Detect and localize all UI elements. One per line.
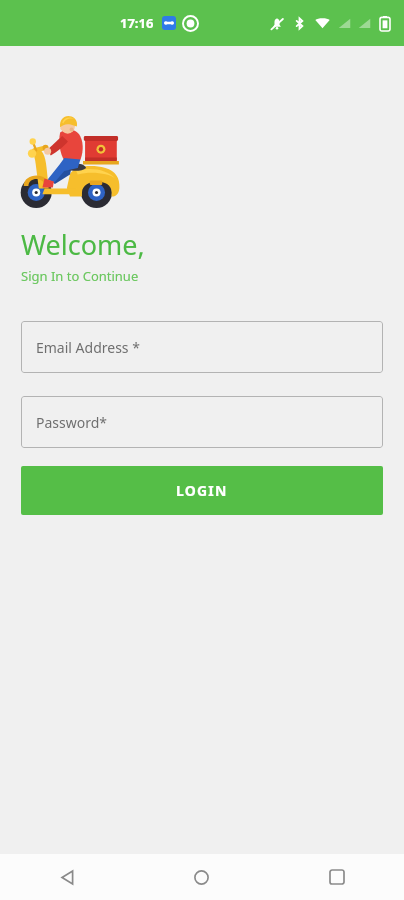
button[interactable]: Password* <box>21 396 383 448</box>
staticText: LOGIN <box>176 481 228 500</box>
staticText: Welcome, <box>21 226 145 263</box>
button[interactable]: Home <box>134 854 269 900</box>
button[interactable]: LOGIN <box>21 466 383 515</box>
button[interactable]: Back <box>0 854 134 900</box>
staticText: Email Address * <box>36 338 140 357</box>
staticText: Password* <box>36 413 108 432</box>
button[interactable]: Email Address * <box>21 321 383 373</box>
staticText: Sign In to Continue <box>21 267 139 285</box>
button[interactable]: Recent apps <box>269 854 404 900</box>
staticText: 17:16 <box>120 14 154 32</box>
